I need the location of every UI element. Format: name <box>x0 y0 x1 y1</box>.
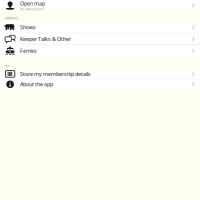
button[interactable]: Shows <box>0 22 200 33</box>
button[interactable]: Keeper Talks & Other <box>0 33 200 45</box>
staticText: Keeper Talks & Other <box>20 35 71 42</box>
staticText: MISC <box>5 64 11 67</box>
staticText: Store my membership details <box>20 70 91 77</box>
button[interactable]: Store my membership details <box>0 69 200 79</box>
staticText: Shows <box>20 24 36 31</box>
button[interactable]: Ferries <box>0 45 200 56</box>
staticText: TIMETABLES <box>5 16 18 20</box>
button[interactable]: Open map <box>0 0 200 9</box>
button[interactable]: About the app <box>0 79 200 89</box>
staticText: About the app <box>20 81 53 88</box>
staticText: Open map <box>20 0 45 7</box>
staticText: No data required <box>20 7 44 11</box>
staticText: Ferries <box>20 47 37 54</box>
